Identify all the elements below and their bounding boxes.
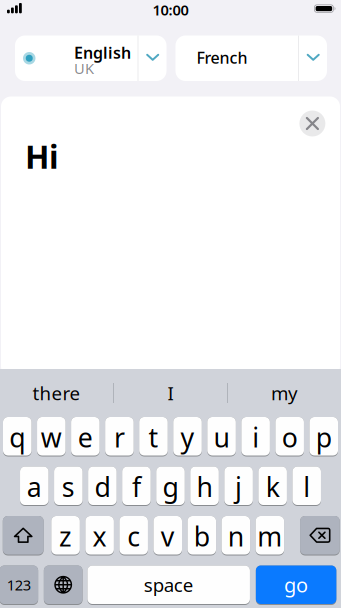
button[interactable]: c xyxy=(119,516,148,555)
staticText: Hi xyxy=(25,135,59,177)
button[interactable] xyxy=(44,565,83,605)
button[interactable]: g xyxy=(156,466,185,506)
button[interactable] xyxy=(300,516,340,555)
button[interactable] xyxy=(299,110,325,136)
staticText: English xyxy=(74,42,131,63)
staticText: 10:00 xyxy=(152,0,188,19)
staticText: French xyxy=(196,47,247,68)
staticText: UK xyxy=(74,58,94,78)
staticText: i xyxy=(252,419,259,455)
staticText: r xyxy=(114,419,125,455)
button[interactable]: b xyxy=(187,516,216,555)
staticText: go xyxy=(284,571,308,598)
button[interactable]: u xyxy=(207,417,236,456)
button[interactable]: s xyxy=(54,466,83,506)
staticText: t xyxy=(148,419,158,455)
staticText: s xyxy=(62,469,75,504)
staticText: there xyxy=(32,381,80,405)
staticText: w xyxy=(41,419,62,455)
button[interactable]: y xyxy=(173,417,202,456)
staticText: my xyxy=(271,381,298,405)
staticText: d xyxy=(94,469,110,504)
staticText: v xyxy=(161,518,175,554)
button[interactable]: k xyxy=(258,466,287,506)
staticText: 123 xyxy=(7,575,31,594)
staticText: l xyxy=(303,469,310,504)
button[interactable]: my xyxy=(228,370,341,416)
button[interactable]: r xyxy=(105,417,134,456)
button[interactable]: f xyxy=(122,466,151,506)
staticText: f xyxy=(132,469,141,504)
button[interactable]: z xyxy=(51,516,80,555)
button[interactable]: 123 xyxy=(0,565,38,605)
button[interactable]: x xyxy=(85,516,114,555)
button[interactable]: French xyxy=(175,35,327,81)
button[interactable]: m xyxy=(256,516,284,555)
staticText: g xyxy=(162,469,178,504)
button[interactable]: w xyxy=(37,417,66,456)
button[interactable]: English xyxy=(15,35,166,81)
button[interactable]: space xyxy=(87,565,250,605)
button[interactable]: t xyxy=(139,417,168,456)
button[interactable]: l xyxy=(292,466,321,506)
staticText: o xyxy=(282,419,298,455)
staticText: j xyxy=(235,469,242,504)
staticText: q xyxy=(9,419,25,455)
staticText: n xyxy=(228,518,244,554)
button[interactable]: I xyxy=(114,370,227,416)
staticText: p xyxy=(316,419,332,455)
staticText: h xyxy=(196,469,212,504)
staticText: I xyxy=(167,381,173,405)
staticText: space xyxy=(144,572,194,597)
staticText: a xyxy=(27,469,42,504)
staticText: c xyxy=(127,518,140,554)
button[interactable]: a xyxy=(20,466,49,506)
button[interactable]: q xyxy=(3,417,32,456)
staticText: u xyxy=(214,419,230,455)
staticText: y xyxy=(180,419,194,455)
button[interactable]: there xyxy=(0,370,113,416)
staticText: e xyxy=(78,419,93,455)
button[interactable]: j xyxy=(224,466,253,506)
button[interactable]: i xyxy=(241,417,270,456)
button[interactable]: d xyxy=(88,466,117,506)
button[interactable]: o xyxy=(275,417,304,456)
button[interactable] xyxy=(3,516,44,555)
button[interactable]: n xyxy=(221,516,250,555)
staticText: m xyxy=(257,518,282,554)
button[interactable]: h xyxy=(190,466,219,506)
staticText: b xyxy=(194,518,210,554)
button[interactable]: e xyxy=(71,417,100,456)
button[interactable]: go xyxy=(256,565,336,605)
staticText: k xyxy=(266,469,280,504)
staticText: z xyxy=(59,518,72,554)
staticText: x xyxy=(93,518,107,554)
button[interactable]: p xyxy=(309,417,338,456)
button[interactable]: v xyxy=(153,516,182,555)
